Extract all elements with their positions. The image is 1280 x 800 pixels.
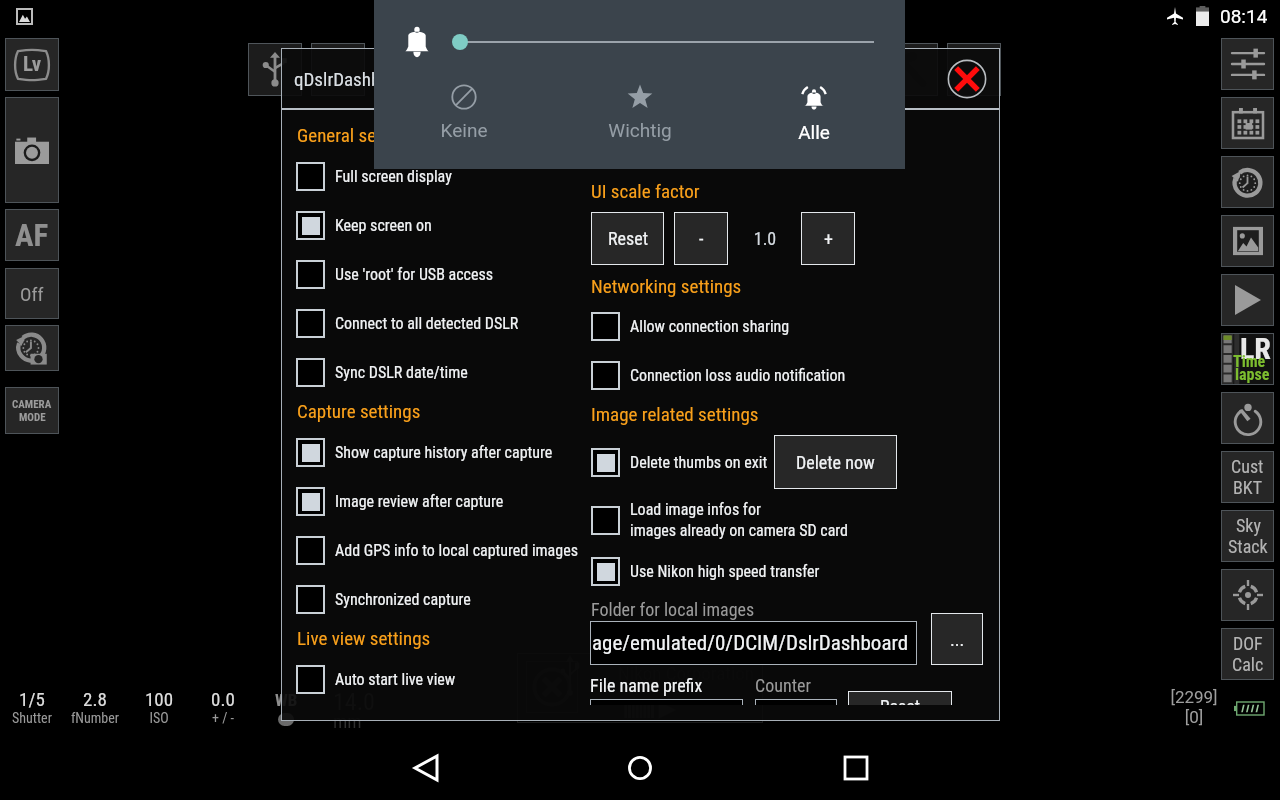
staticText: Connect to all detected DSLR	[335, 314, 519, 333]
staticText: DOF	[1233, 633, 1263, 654]
staticText: MODE	[19, 411, 46, 424]
button[interactable]: +	[801, 212, 855, 265]
button[interactable]: Back	[392, 736, 458, 800]
button[interactable]: Wichtig	[565, 84, 715, 141]
button[interactable]: Home	[607, 736, 673, 800]
button[interactable]: Delete thumbs on exit	[591, 438, 768, 486]
staticText: 100	[114, 688, 204, 710]
button[interactable]: Disconnect	[947, 43, 1001, 96]
button[interactable]: Reset	[848, 691, 952, 705]
staticText: Shutter	[0, 710, 77, 726]
staticText: Nikon Corporation	[618, 662, 755, 684]
button[interactable]: Custom bracketing	[1221, 451, 1274, 503]
button[interactable]: Capture	[5, 97, 59, 203]
staticText: Connection loss audio notification	[630, 366, 846, 385]
button[interactable]: Camera settings	[1221, 38, 1274, 90]
button[interactable]: LR Timelapse	[1221, 333, 1274, 385]
staticText: Cust	[1231, 456, 1264, 477]
button[interactable]: Synchronized capture	[296, 575, 471, 623]
staticText: BKT	[1233, 477, 1263, 498]
button[interactable]: Depth of field calculator	[1221, 628, 1274, 680]
staticText: images already on camera SD card	[630, 521, 849, 540]
staticText: Wichtig	[565, 119, 715, 141]
staticText: 0.0	[178, 688, 268, 710]
button[interactable]: age/emulated/0/DCIM/DslrDashboard	[590, 621, 917, 665]
staticText: Use 'root' for USB access	[335, 265, 494, 284]
button[interactable]: Focus mode	[5, 268, 59, 319]
button[interactable]: Allow connection sharing	[591, 302, 790, 350]
staticText: UI scale factor	[591, 180, 700, 202]
button[interactable]: Focus point	[1221, 569, 1274, 621]
button[interactable]: ...	[931, 613, 983, 665]
staticText: File name prefix	[590, 675, 703, 696]
staticText: age/emulated/0/DCIM/DslrDashboard	[592, 631, 909, 656]
button[interactable]: Keine	[389, 84, 539, 141]
staticText: Keine	[389, 119, 539, 141]
staticText: LR	[1240, 331, 1271, 366]
staticText: Time	[1233, 352, 1266, 371]
button[interactable]: Keep screen on	[296, 201, 432, 249]
button[interactable]: Use Nikon high speed transfer	[591, 547, 820, 595]
staticText: Sky	[1236, 515, 1261, 536]
staticText: [0]	[1159, 707, 1229, 727]
staticText: [2299]	[1159, 687, 1229, 707]
staticText: +	[824, 228, 833, 249]
staticText: Reset	[880, 696, 920, 705]
staticText: Alle	[739, 121, 889, 143]
staticText: Auto start live view	[335, 670, 456, 689]
button[interactable]: Show capture history after capture	[296, 428, 553, 476]
button[interactable]: -	[674, 212, 728, 265]
button[interactable]: Recents	[823, 736, 889, 800]
button[interactable]: Add GPS info to local captured images	[296, 526, 578, 574]
button[interactable]: Auto focus	[5, 209, 59, 261]
staticText: 2.8	[50, 688, 140, 710]
button[interactable]: Connection loss audio notification	[591, 351, 846, 399]
staticText: mm	[333, 710, 362, 732]
staticText: Off	[20, 283, 44, 305]
staticText: 08:14	[1220, 5, 1268, 27]
staticText: Capture settings	[297, 400, 421, 422]
staticText: CAMERA	[12, 398, 52, 411]
button[interactable]: Play	[1221, 274, 1274, 326]
button[interactable]: Self timer	[1221, 392, 1274, 444]
button[interactable]: USB connection	[248, 43, 302, 96]
button[interactable]: Connect to all detected DSLR	[296, 299, 519, 347]
button[interactable]: Profile	[311, 43, 365, 96]
staticText: + / -	[178, 710, 268, 726]
button[interactable]: Full screen display	[296, 152, 452, 200]
staticText: 1/5	[0, 688, 77, 710]
button[interactable]: Image review after capture	[296, 477, 504, 525]
button[interactable]: Close	[948, 60, 986, 98]
button[interactable]: Intervalometer	[5, 325, 59, 371]
button[interactable]: Timelapse	[1221, 156, 1274, 208]
button[interactable]: Tools	[884, 43, 938, 96]
staticText: Stack	[1228, 536, 1268, 557]
button[interactable]: Reset	[591, 212, 664, 265]
staticText: Show capture history after capture	[335, 443, 553, 462]
staticText: Delete thumbs on exit	[630, 453, 768, 472]
staticText: Add GPS info to local captured images	[335, 541, 578, 560]
button[interactable]: Camera mode	[5, 387, 59, 434]
staticText: Image related settings	[591, 403, 759, 425]
button[interactable]: Alle	[739, 84, 889, 143]
button[interactable]: Load image infos for	[591, 496, 849, 544]
staticText: Calc	[1232, 654, 1264, 675]
staticText: Synchronized capture	[335, 590, 471, 609]
button[interactable]: Delete now	[774, 435, 897, 489]
staticText: Delete now	[796, 452, 875, 473]
button[interactable]: Schedule	[1221, 97, 1274, 149]
button[interactable]: Sync DSLR date/time	[296, 348, 468, 396]
button[interactable]: Use 'root' for USB access	[296, 250, 494, 298]
staticText: Full screen display	[335, 167, 452, 186]
button[interactable]: Sky stack	[1221, 510, 1274, 562]
staticText: 1.0	[745, 228, 785, 249]
button[interactable]: Gallery	[16, 8, 33, 25]
button[interactable]: Live view	[5, 38, 59, 91]
staticText: Lv	[23, 52, 42, 77]
button[interactable]: Images	[1221, 215, 1274, 267]
staticText: Counter	[755, 675, 811, 696]
staticText: Sync DSLR date/time	[335, 363, 468, 382]
staticText: Networking settings	[591, 275, 742, 297]
button[interactable]: Auto start live view	[296, 655, 456, 703]
